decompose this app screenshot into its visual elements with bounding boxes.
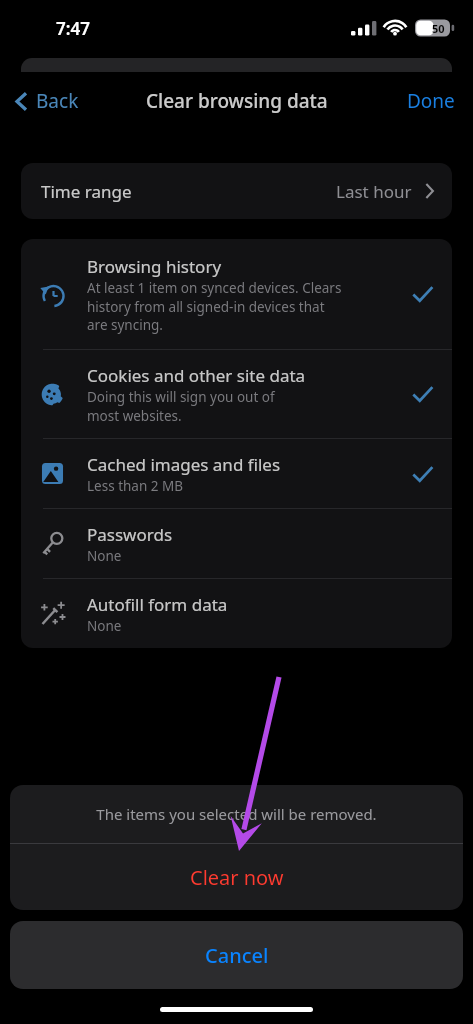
staticText: Doing this will sign you out of most web…: [87, 388, 275, 424]
staticText: Clear now: [190, 864, 284, 891]
staticText: Cookies and other site data: [87, 364, 306, 387]
staticText: Back: [36, 88, 79, 114]
button[interactable]: Back: [6, 80, 87, 122]
staticText: 7:47: [56, 17, 90, 40]
button[interactable]: Time range: [21, 163, 452, 219]
button[interactable]: Done: [389, 78, 473, 124]
staticText: At least 1 item on synced devices. Clear…: [87, 279, 342, 333]
staticText: Cached images and files: [87, 453, 281, 476]
staticText: Done: [407, 88, 455, 114]
staticText: Cancel: [205, 942, 269, 969]
staticText: Last hour: [336, 180, 412, 203]
staticText: Time range: [41, 180, 132, 203]
staticText: The items you selected will be removed.: [96, 804, 377, 824]
button[interactable]: Cancel: [10, 921, 463, 989]
staticText: Clear browsing data: [146, 88, 328, 114]
button[interactable]: Passwords: [21, 509, 452, 578]
staticText: None: [87, 617, 122, 635]
button[interactable]: Autofill form data: [21, 579, 452, 648]
staticText: Browsing history: [87, 255, 222, 278]
staticText: Less than 2 MB: [87, 477, 184, 495]
button[interactable]: Clear now: [10, 844, 463, 910]
button[interactable]: Cookies and other site data: [21, 350, 452, 438]
staticText: None: [87, 547, 122, 565]
button[interactable]: Browsing history: [21, 239, 452, 349]
staticText: 50: [432, 21, 445, 36]
staticText: Autofill form data: [87, 593, 228, 616]
other: Annotation arrow: [0, 0, 473, 1024]
button[interactable]: Cached images and files: [21, 439, 452, 508]
staticText: Passwords: [87, 523, 173, 546]
